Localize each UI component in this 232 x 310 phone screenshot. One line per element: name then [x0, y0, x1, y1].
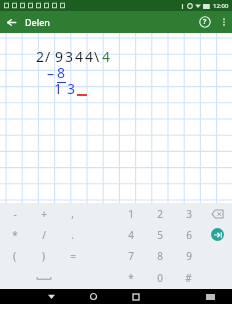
staticText: Delen	[25, 16, 50, 28]
staticText: 5	[157, 228, 163, 242]
button[interactable]: 8	[145, 245, 174, 267]
button[interactable]: +	[29, 203, 58, 224]
staticText: -	[13, 207, 17, 221]
staticText: ?	[203, 17, 207, 27]
button[interactable]: )	[29, 245, 58, 267]
staticText: 1	[128, 207, 134, 221]
button[interactable]: More options	[216, 14, 232, 30]
staticText: –	[47, 64, 54, 83]
button[interactable]: .	[58, 224, 87, 245]
button[interactable]: *	[0, 224, 29, 245]
staticText: /	[45, 47, 51, 66]
staticText: 4	[75, 47, 84, 66]
button[interactable]: #	[174, 267, 203, 289]
button[interactable]: 1	[116, 203, 145, 224]
button[interactable]: 7	[116, 245, 145, 267]
staticText: 9	[55, 47, 64, 66]
staticText: *	[12, 228, 18, 242]
button[interactable]: (	[0, 245, 29, 267]
staticText: 12:00	[213, 2, 229, 10]
button[interactable]: /	[29, 224, 58, 245]
staticText: 4	[85, 47, 94, 66]
staticText: /	[42, 228, 46, 242]
button[interactable]: ,	[58, 203, 87, 224]
staticText: \	[94, 47, 100, 66]
button[interactable]: *	[116, 267, 145, 289]
button[interactable]: Switch keyboard	[203, 289, 218, 304]
staticText: 2	[157, 207, 163, 221]
button[interactable]: 6	[174, 224, 203, 245]
staticText: 3	[67, 79, 76, 98]
staticText: *	[128, 271, 134, 285]
staticText: 2	[36, 47, 45, 66]
staticText: 7	[128, 249, 134, 263]
staticText: ,	[71, 207, 74, 221]
staticText: 4	[102, 47, 111, 66]
button[interactable]: Back	[0, 11, 22, 33]
staticText: 4	[128, 228, 134, 242]
staticText: .	[71, 228, 74, 242]
button[interactable]: Home	[86, 289, 101, 304]
staticText: 9	[186, 249, 192, 263]
button[interactable]: =	[58, 245, 87, 267]
staticText: 1	[54, 79, 63, 98]
button[interactable]: Backspace	[203, 203, 232, 224]
staticText: 6	[186, 228, 192, 242]
button[interactable]: 2	[145, 203, 174, 224]
button[interactable]: Enter	[203, 224, 232, 245]
staticText: +	[41, 207, 47, 221]
button[interactable]: 4	[116, 224, 145, 245]
staticText: 3	[65, 47, 74, 66]
button[interactable]: Help	[194, 11, 216, 33]
staticText: )	[42, 249, 45, 263]
button[interactable]: 0	[145, 267, 174, 289]
button[interactable]: 9	[174, 245, 203, 267]
staticText: 0	[157, 271, 163, 285]
button[interactable]: Space	[29, 267, 58, 289]
button[interactable]: Recent apps	[128, 289, 143, 304]
button[interactable]: 5	[145, 224, 174, 245]
staticText: 8	[57, 63, 66, 82]
staticText: =	[70, 249, 76, 263]
button[interactable]: Back	[44, 289, 59, 304]
staticText: #	[185, 271, 192, 285]
button[interactable]: 3	[174, 203, 203, 224]
button[interactable]: -	[0, 203, 29, 224]
staticText: 8	[157, 249, 163, 263]
staticText: (	[13, 249, 16, 263]
staticText: 3	[186, 207, 192, 221]
